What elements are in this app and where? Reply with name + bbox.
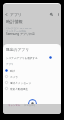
button[interactable]: システムアプリを選択する <box>3 54 61 60</box>
staticText: バージョン 10.1.02.16 <box>6 26 32 29</box>
button[interactable]: 時計 <box>3 67 61 73</box>
button[interactable]: Confirm <box>28 99 37 104</box>
button[interactable]: カメラ <box>3 73 61 79</box>
button[interactable]: 電話とメッセージ <box>3 79 61 85</box>
staticText: 電話とメッセージ <box>10 81 32 84</box>
button[interactable]: Search <box>48 11 55 18</box>
staticText: Samsung アプリ設定 <box>6 32 36 36</box>
staticText: 時計情報 <box>6 19 23 24</box>
button[interactable]: 音楽と動画再生 <box>3 85 61 91</box>
button[interactable]: More options <box>55 11 61 17</box>
staticText: システムアプリを選択する <box>6 56 38 59</box>
staticText: 既定のアプリ <box>6 47 30 52</box>
staticText: アプリ <box>6 63 14 66</box>
staticText: インストール済み <box>6 30 27 33</box>
button[interactable]: Back <box>3 11 10 18</box>
staticText: カメラ <box>10 75 18 78</box>
staticText: キャンセル <box>8 104 21 107</box>
staticText: 設定を開く <box>24 104 37 107</box>
staticText: アプリ <box>10 12 22 17</box>
staticText: 音楽と動画再生 <box>10 87 29 90</box>
staticText: 時計 <box>10 69 16 72</box>
